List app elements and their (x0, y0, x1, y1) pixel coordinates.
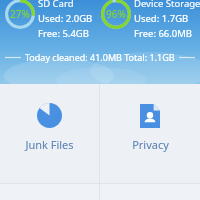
button[interactable]: Privacy (100, 84, 200, 183)
staticText: 27% (10, 7, 30, 21)
staticText: Today cleaned: 41.0MB Total: 1.1GB (25, 51, 175, 63)
staticText: Device Storage (134, 0, 200, 10)
staticText: Used: 1.7GB (134, 12, 189, 25)
staticText: SD Card (38, 0, 74, 10)
staticText: Used: 2.0GB (38, 12, 93, 25)
staticText: Privacy (132, 137, 169, 152)
button[interactable]: Device Storage (101, 0, 131, 29)
button[interactable]: SD Card (5, 0, 35, 29)
staticText: Free: 5.4GB (38, 27, 89, 40)
button[interactable]: Junk Files (0, 84, 99, 183)
staticText: Free: 66.0MB (134, 27, 193, 40)
staticText: 96% (106, 7, 126, 21)
staticText: Junk Files (25, 137, 74, 152)
